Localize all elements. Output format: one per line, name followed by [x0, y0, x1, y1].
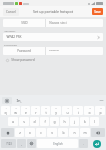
- button[interactable]: 2: [11, 106, 20, 115]
- button[interactable]: v: [47, 128, 57, 137]
- button[interactable]: 7: [62, 106, 72, 115]
- staticText: a: [12, 119, 14, 124]
- staticText: w: [14, 110, 17, 115]
- button[interactable]: 3: [21, 106, 30, 115]
- button[interactable]: g: [50, 117, 59, 126]
- button[interactable]: [27, 139, 36, 148]
- button[interactable]: 9: [84, 106, 94, 115]
- button[interactable]: d: [30, 117, 39, 126]
- staticText: ,: [21, 142, 22, 146]
- button[interactable]: ?123: [1, 139, 16, 148]
- button[interactable]: 6: [51, 106, 61, 115]
- button[interactable]: z: [15, 128, 24, 137]
- other: Expand: [97, 36, 100, 39]
- staticText: b: [62, 130, 65, 135]
- button[interactable]: x: [25, 128, 35, 137]
- staticText: 0: [100, 107, 102, 110]
- staticText: Save: [94, 10, 101, 14]
- staticText: y: [55, 110, 57, 115]
- staticText: In,: [16, 98, 22, 103]
- staticText: n: [73, 130, 76, 135]
- staticText: j: [74, 119, 75, 124]
- button[interactable]: Cancel: [3, 8, 19, 16]
- staticText: Set up portable hotspot: [33, 9, 73, 14]
- button[interactable]: Keyboard settings: [2, 97, 12, 104]
- button[interactable]: h: [60, 117, 69, 126]
- button[interactable]: k: [80, 117, 89, 126]
- staticText: m: [83, 130, 87, 135]
- staticText: c: [40, 130, 42, 135]
- button[interactable]: Save: [92, 8, 103, 15]
- button[interactable]: a: [8, 117, 18, 126]
- staticText: h: [63, 119, 66, 124]
- staticText: k: [84, 119, 86, 124]
- button[interactable]: English: [37, 139, 78, 148]
- staticText: t: [45, 110, 47, 115]
- button[interactable]: b: [58, 128, 68, 137]
- staticText: Password: [17, 49, 31, 53]
- button[interactable]: 1: [1, 106, 10, 115]
- staticText: English: [53, 142, 63, 146]
- staticText: u: [66, 110, 69, 115]
- staticText: 4: [35, 107, 37, 110]
- staticText: 3: [25, 107, 27, 110]
- button[interactable]: Shift: [1, 128, 14, 137]
- staticText: 6: [55, 107, 57, 110]
- staticText: s: [23, 119, 25, 124]
- staticText: z: [19, 130, 21, 135]
- staticText: r: [35, 110, 37, 115]
- staticText: 9: [89, 107, 91, 110]
- staticText: 2: [15, 107, 17, 110]
- button[interactable]: j: [70, 117, 79, 126]
- button[interactable]: 4: [31, 106, 40, 115]
- button[interactable]: Enter: [93, 140, 101, 148]
- button[interactable]: s: [19, 117, 29, 126]
- staticText: 8: [77, 107, 79, 110]
- staticText: .: [83, 142, 84, 146]
- staticText: SSID: [21, 21, 28, 25]
- staticText: d: [33, 119, 36, 124]
- staticText: e: [25, 110, 27, 115]
- staticText: p: [99, 110, 102, 115]
- staticText: v: [51, 130, 53, 135]
- staticText: g: [53, 119, 56, 124]
- staticText: 1: [5, 107, 7, 110]
- staticText: 7: [67, 107, 69, 110]
- button[interactable]: l: [90, 117, 99, 126]
- staticText: PASSWORD: [4, 43, 17, 46]
- button[interactable]: Show password: [3, 57, 37, 63]
- staticText: ?123: [6, 142, 12, 146]
- staticText: q: [4, 110, 7, 115]
- staticText: x: [29, 130, 31, 135]
- staticText: Nazwa sieci: [49, 21, 67, 25]
- staticText: ••••••••: [49, 49, 59, 53]
- button[interactable]: In,: [15, 97, 23, 104]
- staticText: 5: [45, 107, 47, 110]
- button[interactable]: WPA2 PSK: [3, 33, 103, 41]
- staticText: f: [44, 119, 46, 124]
- button[interactable]: f: [40, 117, 49, 126]
- staticText: i: [78, 110, 79, 115]
- button[interactable]: ,: [17, 139, 26, 148]
- button[interactable]: 5: [41, 106, 50, 115]
- button[interactable]: c: [36, 128, 46, 137]
- staticText: o: [88, 110, 91, 115]
- button[interactable]: 8: [73, 106, 83, 115]
- staticText: SECURITY: [4, 29, 16, 32]
- button[interactable]: 0: [95, 106, 105, 115]
- staticText: Cancel: [6, 10, 16, 14]
- button[interactable]: m: [80, 128, 90, 137]
- staticText: l: [94, 119, 95, 124]
- staticText: WPA2 PSK: [6, 35, 22, 39]
- button[interactable]: n: [69, 128, 79, 137]
- button[interactable]: Delete: [91, 128, 105, 137]
- button[interactable]: More: [99, 98, 104, 103]
- staticText: Show password: [11, 58, 35, 62]
